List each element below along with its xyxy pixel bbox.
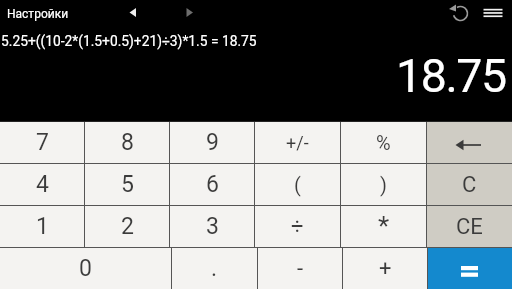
staticText: CE: [456, 214, 483, 240]
button[interactable]: 8: [85, 122, 169, 163]
staticText: 7: [36, 129, 49, 156]
button[interactable]: [428, 248, 512, 289]
button[interactable]: CE: [427, 206, 512, 247]
button[interactable]: C: [427, 164, 512, 205]
staticText: (: [294, 173, 301, 196]
button[interactable]: *: [341, 206, 426, 247]
button[interactable]: [120, 0, 146, 27]
staticText: 3: [206, 213, 219, 240]
staticText: 2: [121, 213, 134, 240]
staticText: 4: [36, 171, 49, 198]
button[interactable]: .: [172, 248, 257, 289]
staticText: 1: [36, 213, 49, 240]
staticText: *: [378, 211, 390, 241]
staticText: 6: [206, 171, 219, 198]
button[interactable]: [478, 0, 508, 27]
staticText: Настройки: [7, 7, 69, 21]
staticText: 9: [206, 129, 219, 156]
button[interactable]: [176, 0, 202, 27]
button[interactable]: 1: [0, 206, 84, 247]
staticText: +/-: [286, 132, 309, 153]
staticText: C: [462, 172, 477, 198]
button[interactable]: +/-: [255, 122, 340, 163]
button[interactable]: (: [255, 164, 340, 205]
button[interactable]: -: [258, 248, 342, 289]
button[interactable]: [444, 0, 472, 27]
staticText: 0: [79, 255, 92, 282]
button[interactable]: ÷: [255, 206, 340, 247]
button[interactable]: %: [341, 122, 426, 163]
button[interactable]: 7: [0, 122, 84, 163]
button[interactable]: [427, 122, 512, 163]
button[interactable]: 4: [0, 164, 84, 205]
staticText: 18.75: [396, 49, 506, 103]
button[interactable]: Настройки: [0, 0, 90, 27]
staticText: %: [376, 131, 391, 154]
button[interactable]: 3: [170, 206, 254, 247]
staticText: ÷: [291, 214, 304, 240]
button[interactable]: ): [341, 164, 426, 205]
button[interactable]: 0: [0, 248, 171, 289]
staticText: -: [297, 256, 304, 282]
staticText: 5: [121, 171, 134, 198]
staticText: +: [379, 256, 392, 282]
button[interactable]: 2: [85, 206, 169, 247]
staticText: .: [211, 255, 218, 282]
staticText: 5.25+((10-2*(1.5+0.5)+21)÷3)*1.5 = 18.75: [1, 33, 257, 49]
button[interactable]: +: [343, 248, 427, 289]
button[interactable]: 5: [85, 164, 169, 205]
button[interactable]: 6: [170, 164, 254, 205]
staticText: ): [380, 173, 387, 196]
staticText: 8: [121, 129, 134, 156]
button[interactable]: 9: [170, 122, 254, 163]
